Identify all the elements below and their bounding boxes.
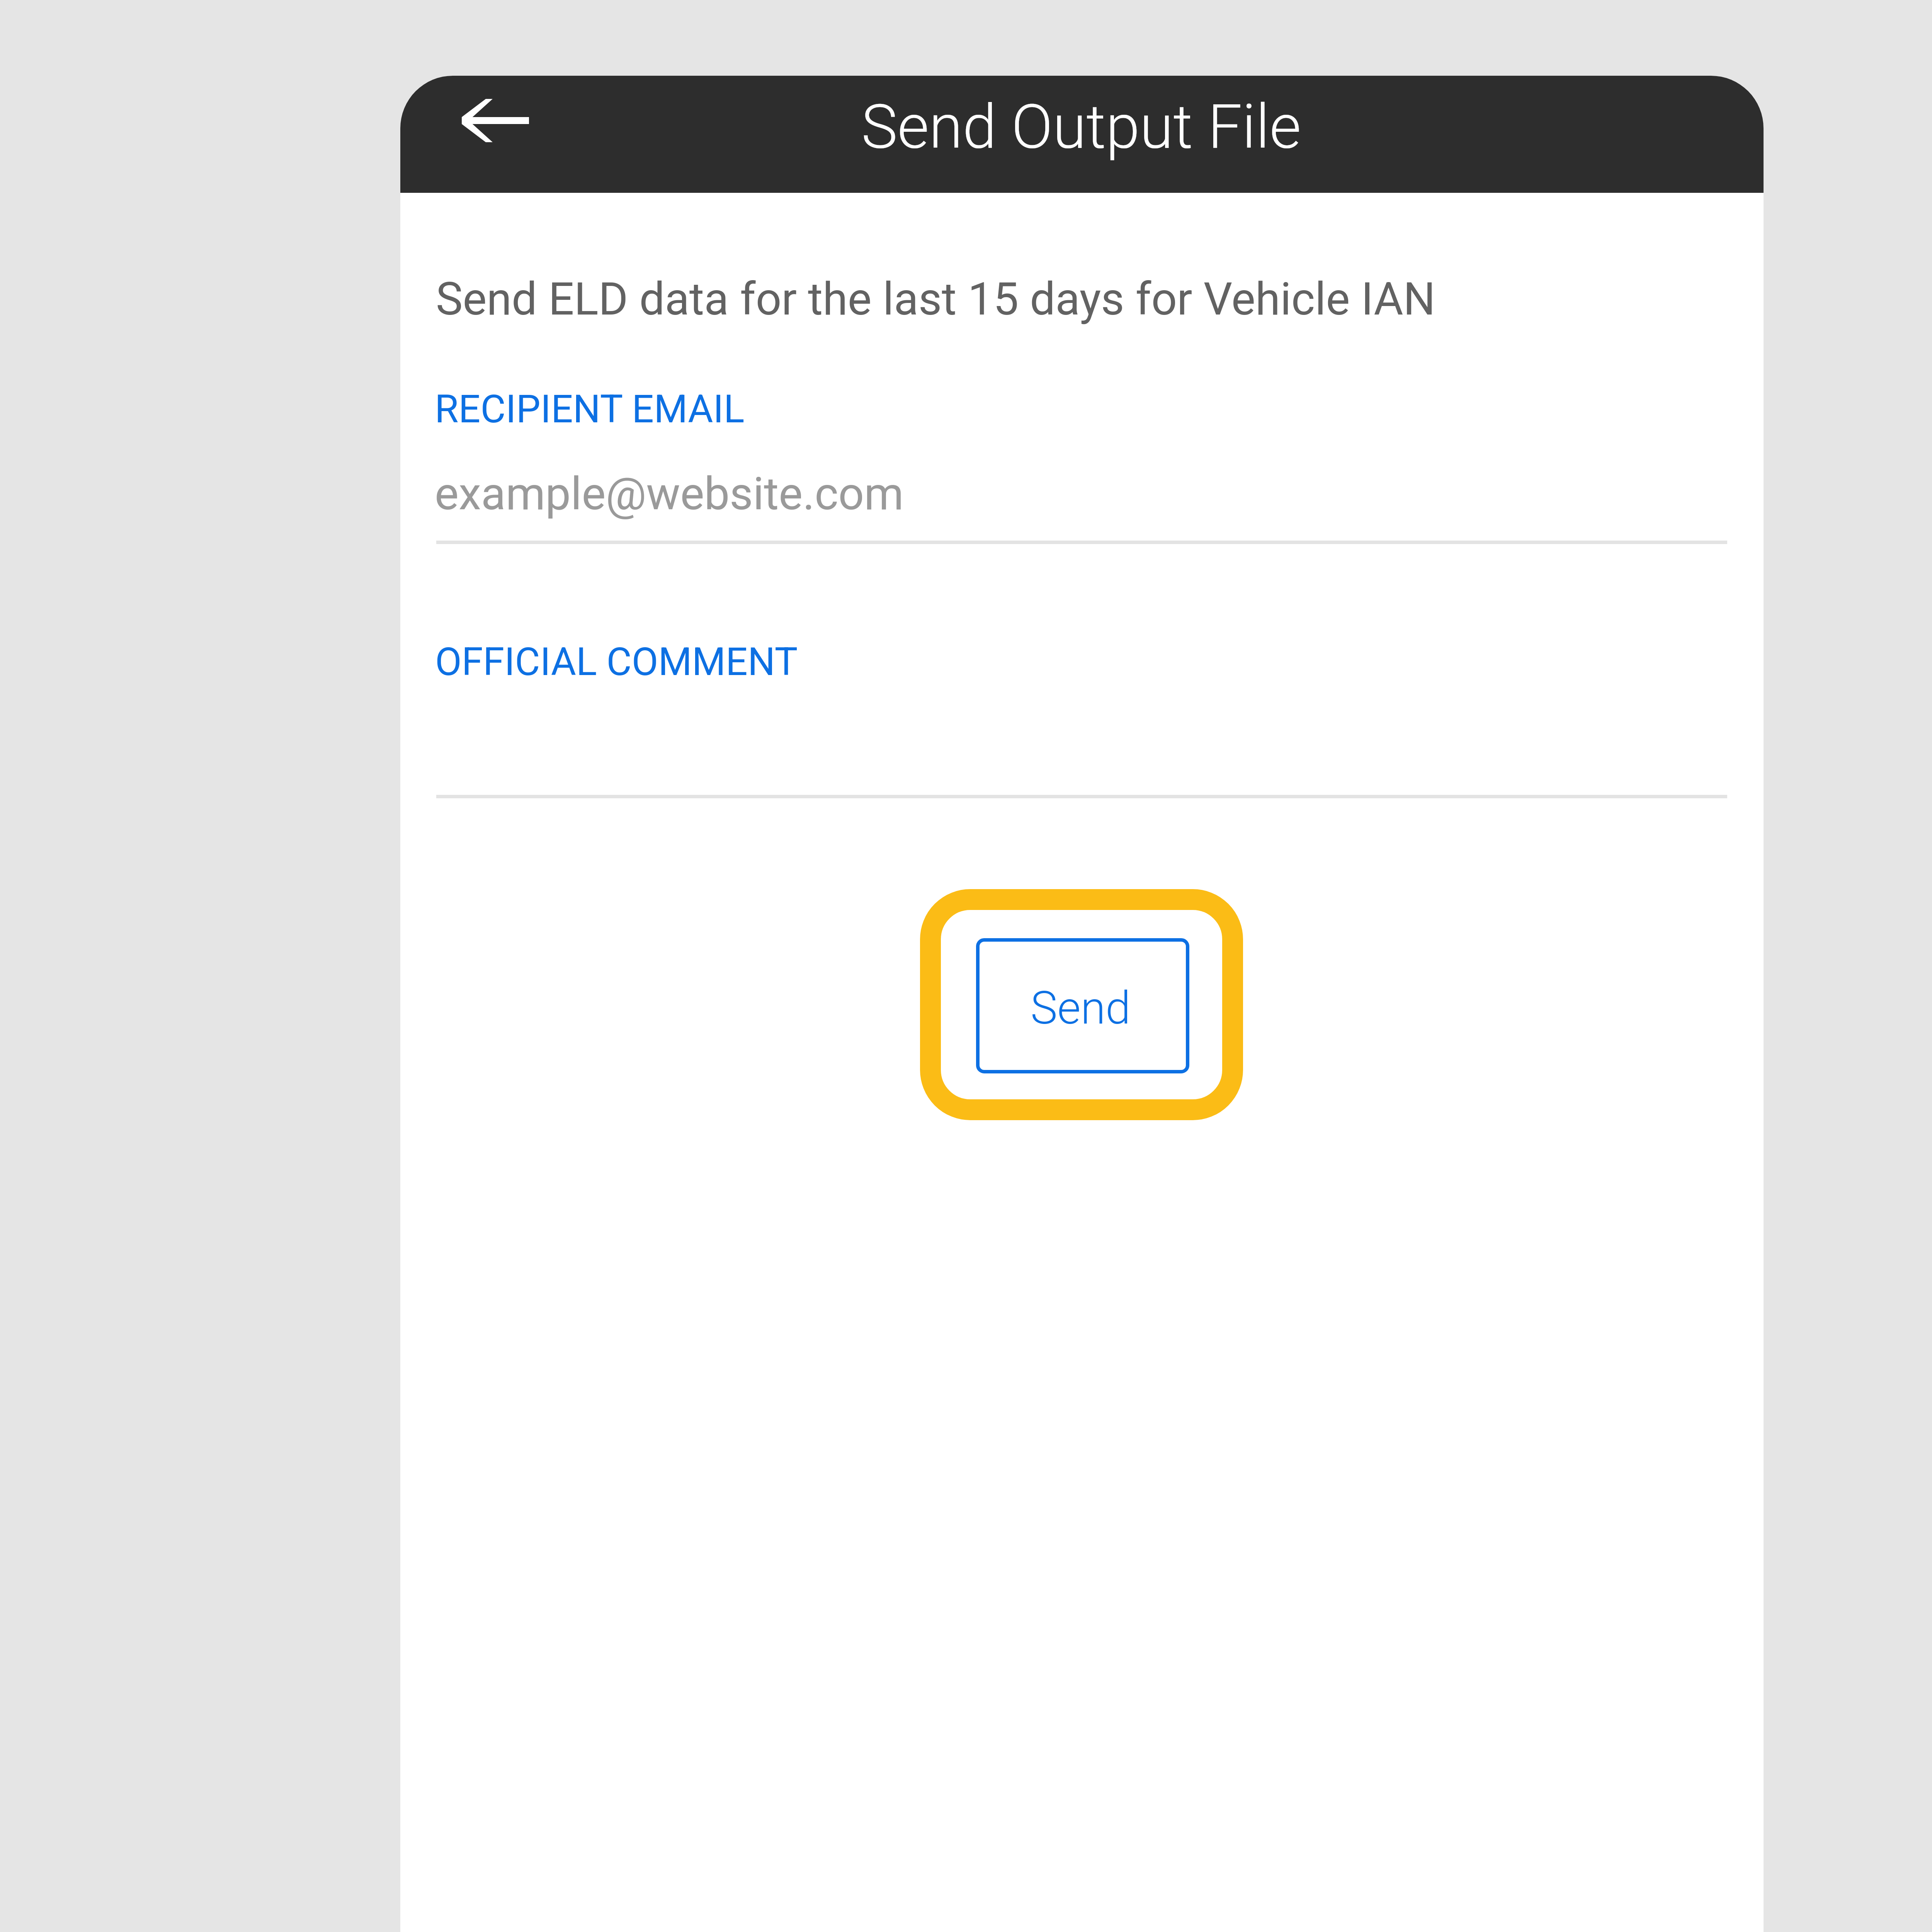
staticText: RECIPIENT EMAIL [435, 386, 745, 432]
staticText: Send ELD data for the last 15 days for V… [436, 272, 1436, 325]
button[interactable]: Send [920, 889, 1243, 1120]
staticText: example@website.com [435, 467, 904, 520]
staticText: OFFICIAL COMMENT [435, 639, 798, 684]
staticText: Send Output File [861, 91, 1301, 162]
staticText: Send [1031, 981, 1131, 1034]
button[interactable]: Back [429, 76, 562, 179]
